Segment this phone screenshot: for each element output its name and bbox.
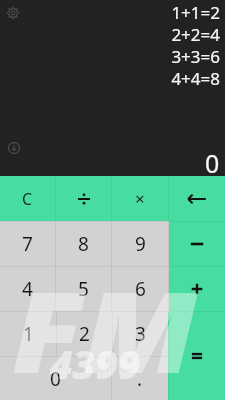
staticText: 0 [205, 146, 220, 180]
button[interactable]: × [112, 176, 168, 221]
staticText: 5 [78, 276, 89, 302]
staticText: × [135, 187, 145, 210]
staticText: 3+3=6 [171, 45, 220, 67]
button[interactable]: 5 [56, 267, 111, 311]
button[interactable]: . [112, 357, 168, 400]
button[interactable]: History [2, 136, 26, 160]
button[interactable]: C [0, 176, 55, 221]
button[interactable]: Backspace [169, 176, 225, 221]
staticText: 3 [135, 321, 146, 347]
button[interactable]: Plus [169, 267, 225, 311]
button[interactable]: 9 [112, 222, 168, 266]
staticText: 8 [78, 231, 89, 257]
staticText: 4 [22, 276, 33, 302]
staticText: 7 [22, 231, 33, 257]
button[interactable]: Minus [169, 222, 225, 266]
button[interactable]: Settings [0, 0, 26, 26]
button[interactable]: 6 [112, 267, 168, 311]
staticText: 6 [135, 276, 146, 302]
staticText: 1 [23, 321, 34, 347]
button[interactable]: 8 [56, 222, 111, 266]
staticText: 9 [135, 231, 146, 257]
button[interactable] [56, 176, 111, 221]
staticText: 0 [50, 366, 61, 392]
staticText: . [137, 366, 143, 392]
button[interactable]: 4 [0, 267, 55, 311]
button[interactable]: 2 [57, 312, 112, 356]
button[interactable]: Equals [169, 312, 225, 400]
staticText: 2+2=4 [171, 23, 220, 45]
staticText: C [22, 188, 33, 210]
staticText: 4+4=8 [171, 67, 220, 89]
button[interactable]: 1 [0, 312, 56, 356]
button[interactable]: 0 [0, 357, 111, 400]
staticText: 1+1=2 [171, 1, 220, 23]
button[interactable]: 3 [113, 312, 168, 356]
staticText: 2 [79, 321, 90, 347]
button[interactable]: 7 [0, 222, 55, 266]
